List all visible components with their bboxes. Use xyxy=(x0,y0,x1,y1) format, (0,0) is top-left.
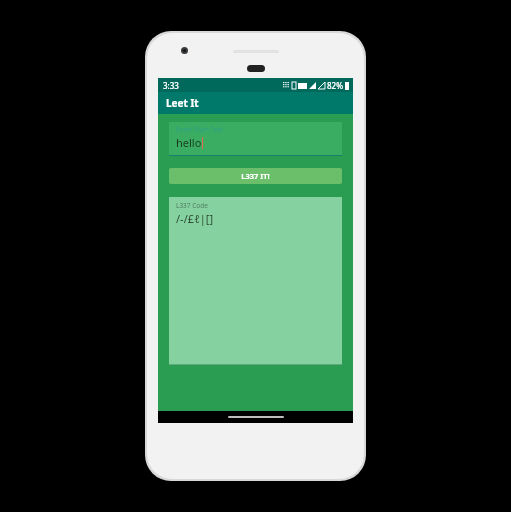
staticText: Enter Plain Text xyxy=(176,125,224,134)
button[interactable]: Enter Plain Text xyxy=(169,122,342,156)
staticText: L337 Code xyxy=(176,201,208,210)
staticText: hello xyxy=(176,135,202,150)
staticText: Leet It xyxy=(166,96,199,110)
staticText: 3:33 xyxy=(163,80,179,91)
staticText: L337 IT! xyxy=(241,171,270,181)
staticText: 82% xyxy=(327,80,343,91)
button[interactable]: L337 Code xyxy=(169,197,342,365)
staticText: /-/£ℓ|[] xyxy=(176,211,214,226)
button[interactable]: L337 IT! xyxy=(169,168,342,184)
